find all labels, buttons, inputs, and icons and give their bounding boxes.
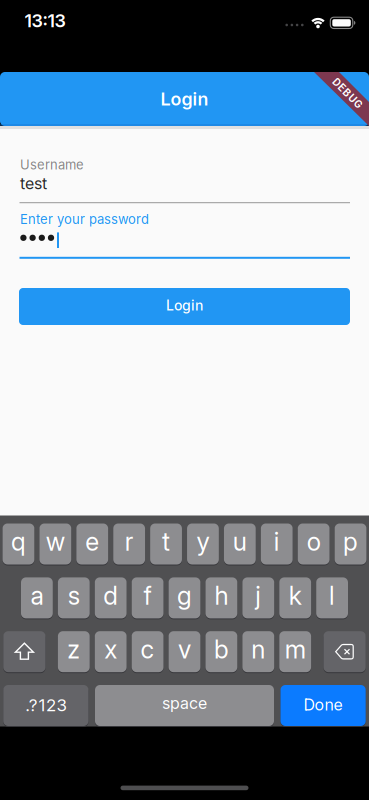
- staticText: o: [307, 527, 321, 556]
- staticText: z: [67, 635, 80, 664]
- button[interactable]: p: [335, 523, 366, 564]
- staticText: p: [343, 527, 358, 556]
- staticText: Done: [304, 695, 343, 714]
- staticText: m: [285, 635, 306, 664]
- button[interactable]: e: [76, 523, 108, 564]
- button[interactable]: s: [58, 577, 90, 618]
- staticText: n: [251, 635, 265, 664]
- button[interactable]: c: [132, 631, 163, 672]
- staticText: e: [85, 527, 99, 556]
- staticText: b: [214, 635, 229, 664]
- staticText: .?123: [25, 695, 67, 715]
- button[interactable]: t: [150, 523, 182, 564]
- button[interactable]: z: [58, 631, 90, 672]
- staticText: a: [30, 581, 43, 610]
- staticText: h: [214, 581, 228, 610]
- button[interactable]: l: [316, 577, 348, 618]
- button[interactable]: v: [169, 631, 200, 672]
- button[interactable]: Shift: [3, 631, 45, 672]
- button[interactable]: k: [279, 577, 311, 618]
- staticText: q: [11, 527, 26, 556]
- button[interactable]: y: [187, 523, 219, 564]
- staticText: u: [233, 527, 247, 556]
- staticText: y: [196, 527, 209, 556]
- button[interactable]: Delete: [323, 631, 366, 672]
- staticText: l: [329, 581, 335, 610]
- staticText: w: [46, 527, 65, 556]
- button[interactable]: g: [169, 577, 200, 618]
- button[interactable]: n: [242, 631, 274, 672]
- button[interactable]: Username: [19, 152, 350, 204]
- button[interactable]: b: [205, 631, 237, 672]
- button[interactable]: Login: [19, 288, 350, 325]
- button[interactable]: Enter your password: [19, 208, 350, 259]
- staticText: space: [162, 694, 207, 713]
- staticText: x: [104, 635, 117, 664]
- staticText: k: [289, 581, 302, 610]
- staticText: f: [144, 581, 152, 610]
- button[interactable]: w: [39, 523, 71, 564]
- staticText: t: [162, 527, 170, 556]
- staticText: Username: [20, 157, 84, 172]
- button[interactable]: o: [298, 523, 330, 564]
- staticText: g: [177, 581, 192, 610]
- button[interactable]: .?123: [3, 685, 88, 726]
- button[interactable]: j: [242, 577, 274, 618]
- staticText: Login: [160, 88, 208, 110]
- button[interactable]: f: [132, 577, 163, 618]
- staticText: i: [274, 527, 280, 556]
- staticText: 13:13: [24, 10, 65, 31]
- button[interactable]: u: [224, 523, 256, 564]
- button[interactable]: m: [279, 631, 311, 672]
- button[interactable]: q: [2, 523, 34, 564]
- staticText: test: [20, 174, 47, 193]
- button[interactable]: Done: [280, 685, 366, 726]
- button[interactable]: space: [95, 685, 274, 726]
- button[interactable]: r: [113, 523, 145, 564]
- staticText: d: [103, 581, 118, 610]
- button[interactable]: i: [261, 523, 293, 564]
- button[interactable]: x: [95, 631, 127, 672]
- staticText: s: [68, 581, 80, 610]
- staticText: DEBUG: [328, 88, 367, 99]
- button[interactable]: d: [95, 577, 127, 618]
- staticText: v: [178, 635, 191, 664]
- staticText: Enter your password: [20, 211, 149, 227]
- staticText: r: [125, 527, 134, 556]
- staticText: j: [255, 581, 261, 610]
- button[interactable]: h: [205, 577, 237, 618]
- staticText: Login: [166, 297, 203, 314]
- staticText: c: [141, 635, 155, 664]
- button[interactable]: a: [21, 577, 53, 618]
- button[interactable]: Home: [120, 786, 248, 790]
